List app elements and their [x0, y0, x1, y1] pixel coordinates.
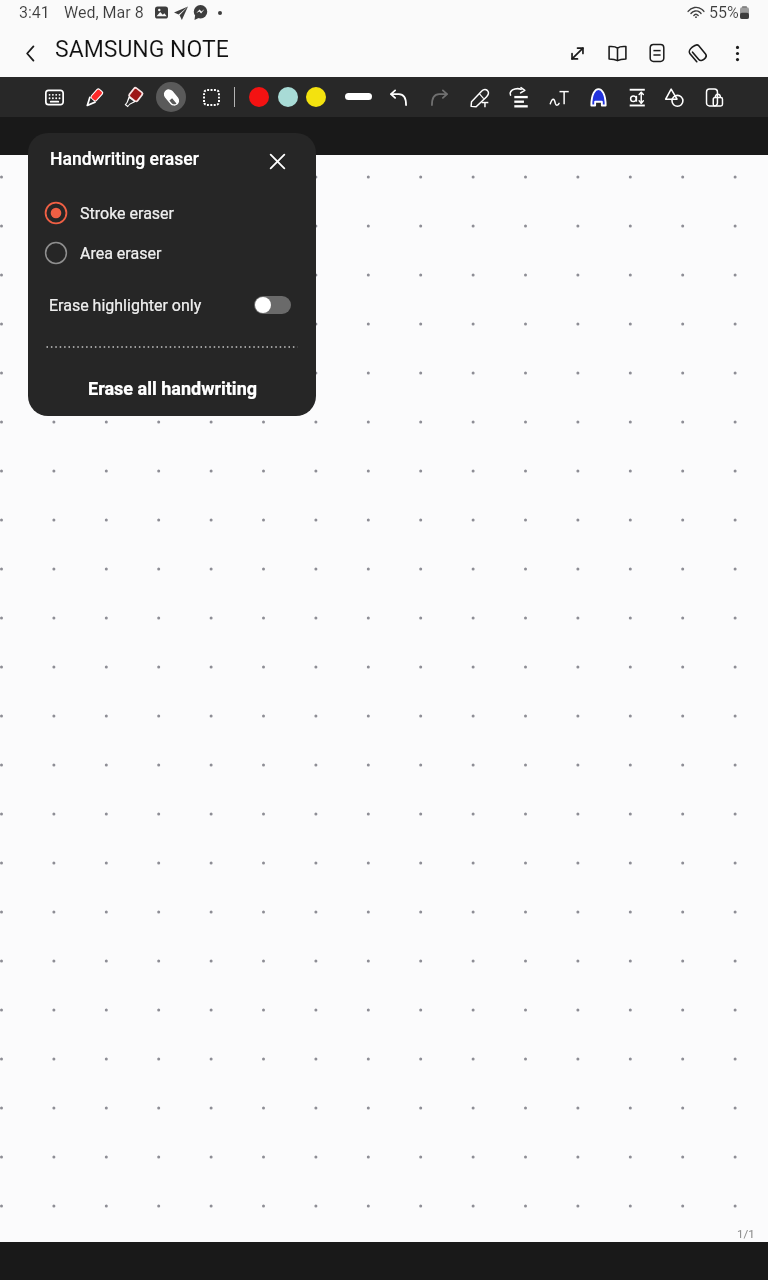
button[interactable]: Colour	[278, 87, 298, 107]
staticText: SAMSUNG NOTE	[55, 36, 229, 63]
button[interactable]: Book view	[597, 30, 637, 76]
staticText: Erase highlighter only	[49, 296, 202, 315]
button[interactable]: Close	[261, 145, 294, 178]
button[interactable]: Handwriting to text	[542, 80, 576, 114]
staticText: Wed, Mar 8	[64, 3, 144, 22]
button[interactable]: Lock screen	[697, 80, 731, 114]
button[interactable]: Auto format	[501, 80, 535, 114]
staticText: Handwriting eraser	[50, 149, 199, 170]
button[interactable]: Attach	[677, 30, 717, 76]
staticText: Stroke eraser	[80, 204, 174, 223]
button[interactable]: Undo	[381, 80, 415, 114]
button[interactable]: Pen thickness	[345, 93, 372, 100]
button[interactable]: Keyboard	[37, 80, 71, 114]
staticText: Area eraser	[80, 244, 162, 263]
button[interactable]: Convert handwriting to text	[462, 80, 496, 114]
button[interactable]: Text size	[621, 80, 655, 114]
staticText: 55%	[709, 3, 739, 22]
button[interactable]: Expand	[557, 30, 597, 76]
staticText: Erase all handwriting	[88, 378, 257, 399]
button[interactable]: More options	[717, 30, 757, 76]
button[interactable]: Shapes	[657, 80, 691, 114]
staticText: 3:41	[19, 3, 50, 22]
button[interactable]: Redo	[422, 80, 456, 114]
button[interactable]: Smart writing	[581, 80, 615, 114]
button[interactable]: Pen	[77, 80, 111, 114]
button[interactable]: Area eraser	[28, 233, 316, 273]
button[interactable]: Erase all handwriting	[28, 360, 316, 416]
button[interactable]: Colour	[249, 87, 269, 107]
button[interactable]: Stroke eraser	[28, 193, 316, 233]
button[interactable]: Back	[8, 31, 52, 75]
button[interactable]: Colour	[306, 87, 326, 107]
button[interactable]: Select area	[194, 80, 228, 114]
button[interactable]: Eraser	[156, 82, 186, 112]
staticText: 1/1	[737, 1227, 755, 1240]
button[interactable]: Erase highlighter only	[28, 285, 316, 325]
button[interactable]: Highlighter	[116, 80, 150, 114]
button[interactable]: Note list	[637, 30, 677, 76]
